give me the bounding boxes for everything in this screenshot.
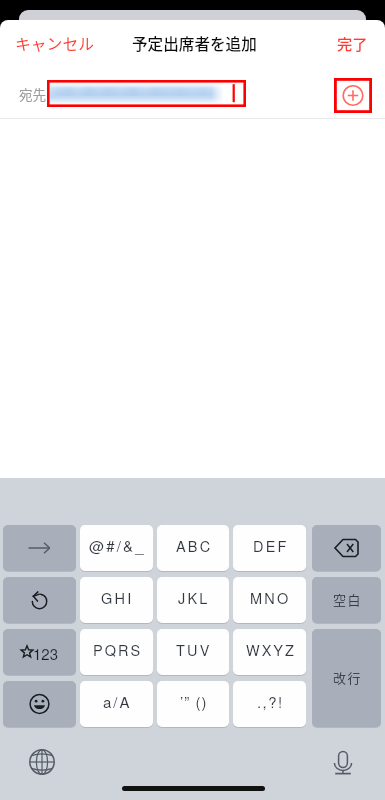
button[interactable]: キャンセル xyxy=(12,29,96,57)
button[interactable]: ABC xyxy=(157,525,229,571)
button[interactable]: TUV xyxy=(157,629,229,675)
button[interactable]: 123 xyxy=(3,629,76,675)
staticText: 123 xyxy=(33,643,59,664)
button[interactable]: WXYZ xyxy=(233,629,306,675)
button[interactable]: DEF xyxy=(233,525,306,571)
staticText: 空白 xyxy=(333,590,363,609)
button[interactable]: GHI xyxy=(80,577,153,623)
staticText: 宛先: xyxy=(19,84,50,104)
staticText: ’” () xyxy=(180,691,208,712)
staticText: 完了 xyxy=(337,32,368,54)
button[interactable]: .,?! xyxy=(233,681,306,727)
staticText: 予定出席者を追加 xyxy=(132,32,257,55)
button[interactable]: Emoji xyxy=(3,681,76,727)
staticText: MNO xyxy=(250,587,291,608)
staticText: DEF xyxy=(253,535,289,556)
button[interactable]: a/A xyxy=(80,681,153,727)
button[interactable]: ’” () xyxy=(157,681,229,727)
button[interactable]: JKL xyxy=(157,577,229,623)
staticText: 改行 xyxy=(333,668,363,687)
button[interactable]: Dictation xyxy=(330,749,356,775)
staticText: ABC xyxy=(176,535,213,556)
button[interactable]: Delete xyxy=(312,525,381,571)
button[interactable]: PQRS xyxy=(80,629,153,675)
staticText: .,?! xyxy=(257,691,284,712)
button[interactable]: Change keyboard xyxy=(29,749,55,775)
button[interactable]: 完了 xyxy=(330,29,374,57)
staticText: WXYZ xyxy=(246,639,296,660)
staticText: JKL xyxy=(178,587,210,608)
button[interactable]: @#/&_ xyxy=(80,525,153,571)
staticText: a/A xyxy=(103,691,132,712)
staticText: キャンセル xyxy=(15,32,94,55)
button[interactable]: Next xyxy=(3,525,76,571)
staticText: @#/&_ xyxy=(89,535,146,556)
staticText: PQRS xyxy=(93,639,143,660)
button[interactable]: MNO xyxy=(233,577,306,623)
button[interactable]: Undo xyxy=(3,577,76,623)
button[interactable]: 改行 xyxy=(312,629,381,727)
staticText: GHI xyxy=(101,587,134,608)
button[interactable]: 空白 xyxy=(312,577,381,623)
button[interactable]: Add attendee xyxy=(334,78,372,113)
staticText: TUV xyxy=(176,639,212,660)
